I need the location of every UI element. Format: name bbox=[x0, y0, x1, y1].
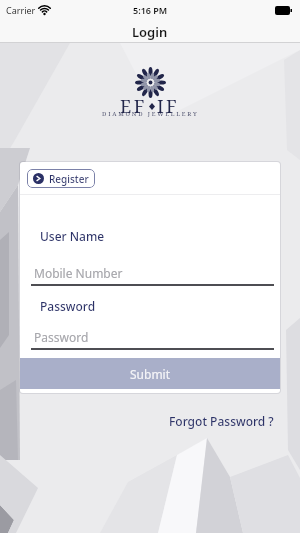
staticText: 5:16 PM bbox=[133, 4, 168, 16]
button[interactable]: Submit bbox=[20, 358, 280, 389]
button[interactable]: Register bbox=[27, 169, 95, 188]
staticText: User Name bbox=[40, 228, 105, 244]
staticText: Mobile Number bbox=[34, 265, 123, 281]
button[interactable]: Forgot Password ? bbox=[169, 413, 274, 429]
staticText: DIAMOND JEWELLERY bbox=[102, 110, 199, 118]
staticText: Submit bbox=[130, 366, 171, 382]
staticText: Register bbox=[49, 172, 89, 186]
staticText: Carrier bbox=[6, 4, 36, 16]
staticText: Password bbox=[40, 298, 96, 314]
staticText: EF bbox=[120, 94, 147, 119]
staticText: Password bbox=[34, 329, 89, 345]
staticText: IF bbox=[157, 94, 180, 119]
staticText: Login bbox=[132, 23, 168, 41]
